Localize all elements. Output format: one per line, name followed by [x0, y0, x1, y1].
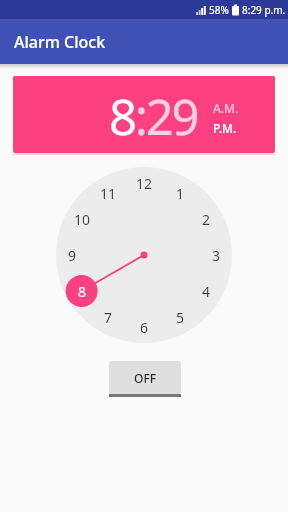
staticText: 3 [212, 246, 221, 265]
staticText: OFF [134, 370, 157, 386]
staticText: 8:29 [109, 83, 198, 150]
button[interactable]: 8:29 [13, 76, 275, 153]
staticText: 8:29 p.m. [242, 3, 286, 17]
staticText: 6 [140, 318, 149, 337]
staticText: 4 [202, 282, 211, 301]
staticText: Alarm Clock [14, 31, 106, 53]
staticText: 12 [136, 174, 153, 193]
staticText: 9 [68, 246, 77, 265]
button[interactable]: OFF [109, 361, 181, 394]
staticText: 8 [78, 282, 87, 301]
staticText: A.M. [213, 100, 239, 116]
staticText: P.M. [213, 120, 237, 136]
staticText: 5 [176, 308, 185, 327]
staticText: 7 [104, 308, 113, 327]
button[interactable]: 1 [56, 167, 232, 343]
staticText: 10 [74, 210, 91, 229]
staticText: 11 [100, 184, 117, 203]
staticText: 1 [176, 184, 185, 203]
staticText: 58% [209, 3, 229, 17]
staticText: 2 [202, 210, 211, 229]
